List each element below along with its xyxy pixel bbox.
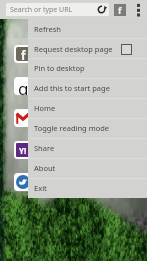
staticText: Pin to desktop <box>34 63 147 73</box>
staticText: Exit <box>34 183 147 193</box>
button[interactable]: Refresh <box>28 19 147 38</box>
button[interactable]: Reload <box>96 4 107 15</box>
button[interactable]: Yahoo <box>14 141 32 159</box>
staticText: g <box>18 77 29 95</box>
staticText: Share <box>34 143 147 153</box>
button[interactable]: Request desktop page <box>28 38 147 58</box>
button[interactable]: Gmail <box>14 109 32 127</box>
button[interactable]: Toggle reading mode <box>28 118 147 138</box>
button[interactable]: Twitter <box>14 173 32 191</box>
staticText: Search or type URL <box>10 5 73 15</box>
button[interactable]: Facebook <box>114 4 126 16</box>
staticText: Home <box>34 103 147 113</box>
button[interactable]: Pin to desktop <box>28 58 147 78</box>
staticText: About <box>34 163 147 173</box>
staticText: Refresh <box>34 24 147 34</box>
staticText: f <box>118 4 122 16</box>
button[interactable]: Facebook <box>14 45 32 63</box>
button[interactable]: Search or type URL <box>6 3 109 16</box>
button[interactable]: Exit <box>28 178 147 198</box>
staticText: Y! <box>19 145 27 156</box>
staticText: f <box>21 47 26 61</box>
staticText: Add this to start page <box>34 83 147 93</box>
button[interactable]: About <box>28 158 147 178</box>
staticText: Toggle reading mode <box>34 123 147 133</box>
button[interactable]: Home <box>28 98 147 118</box>
button[interactable]: Google <box>14 77 32 95</box>
staticText: Request desktop page <box>34 44 121 54</box>
button[interactable]: Add this to start page <box>28 78 147 98</box>
button[interactable]: More options <box>132 1 144 18</box>
button[interactable]: Share <box>28 138 147 158</box>
